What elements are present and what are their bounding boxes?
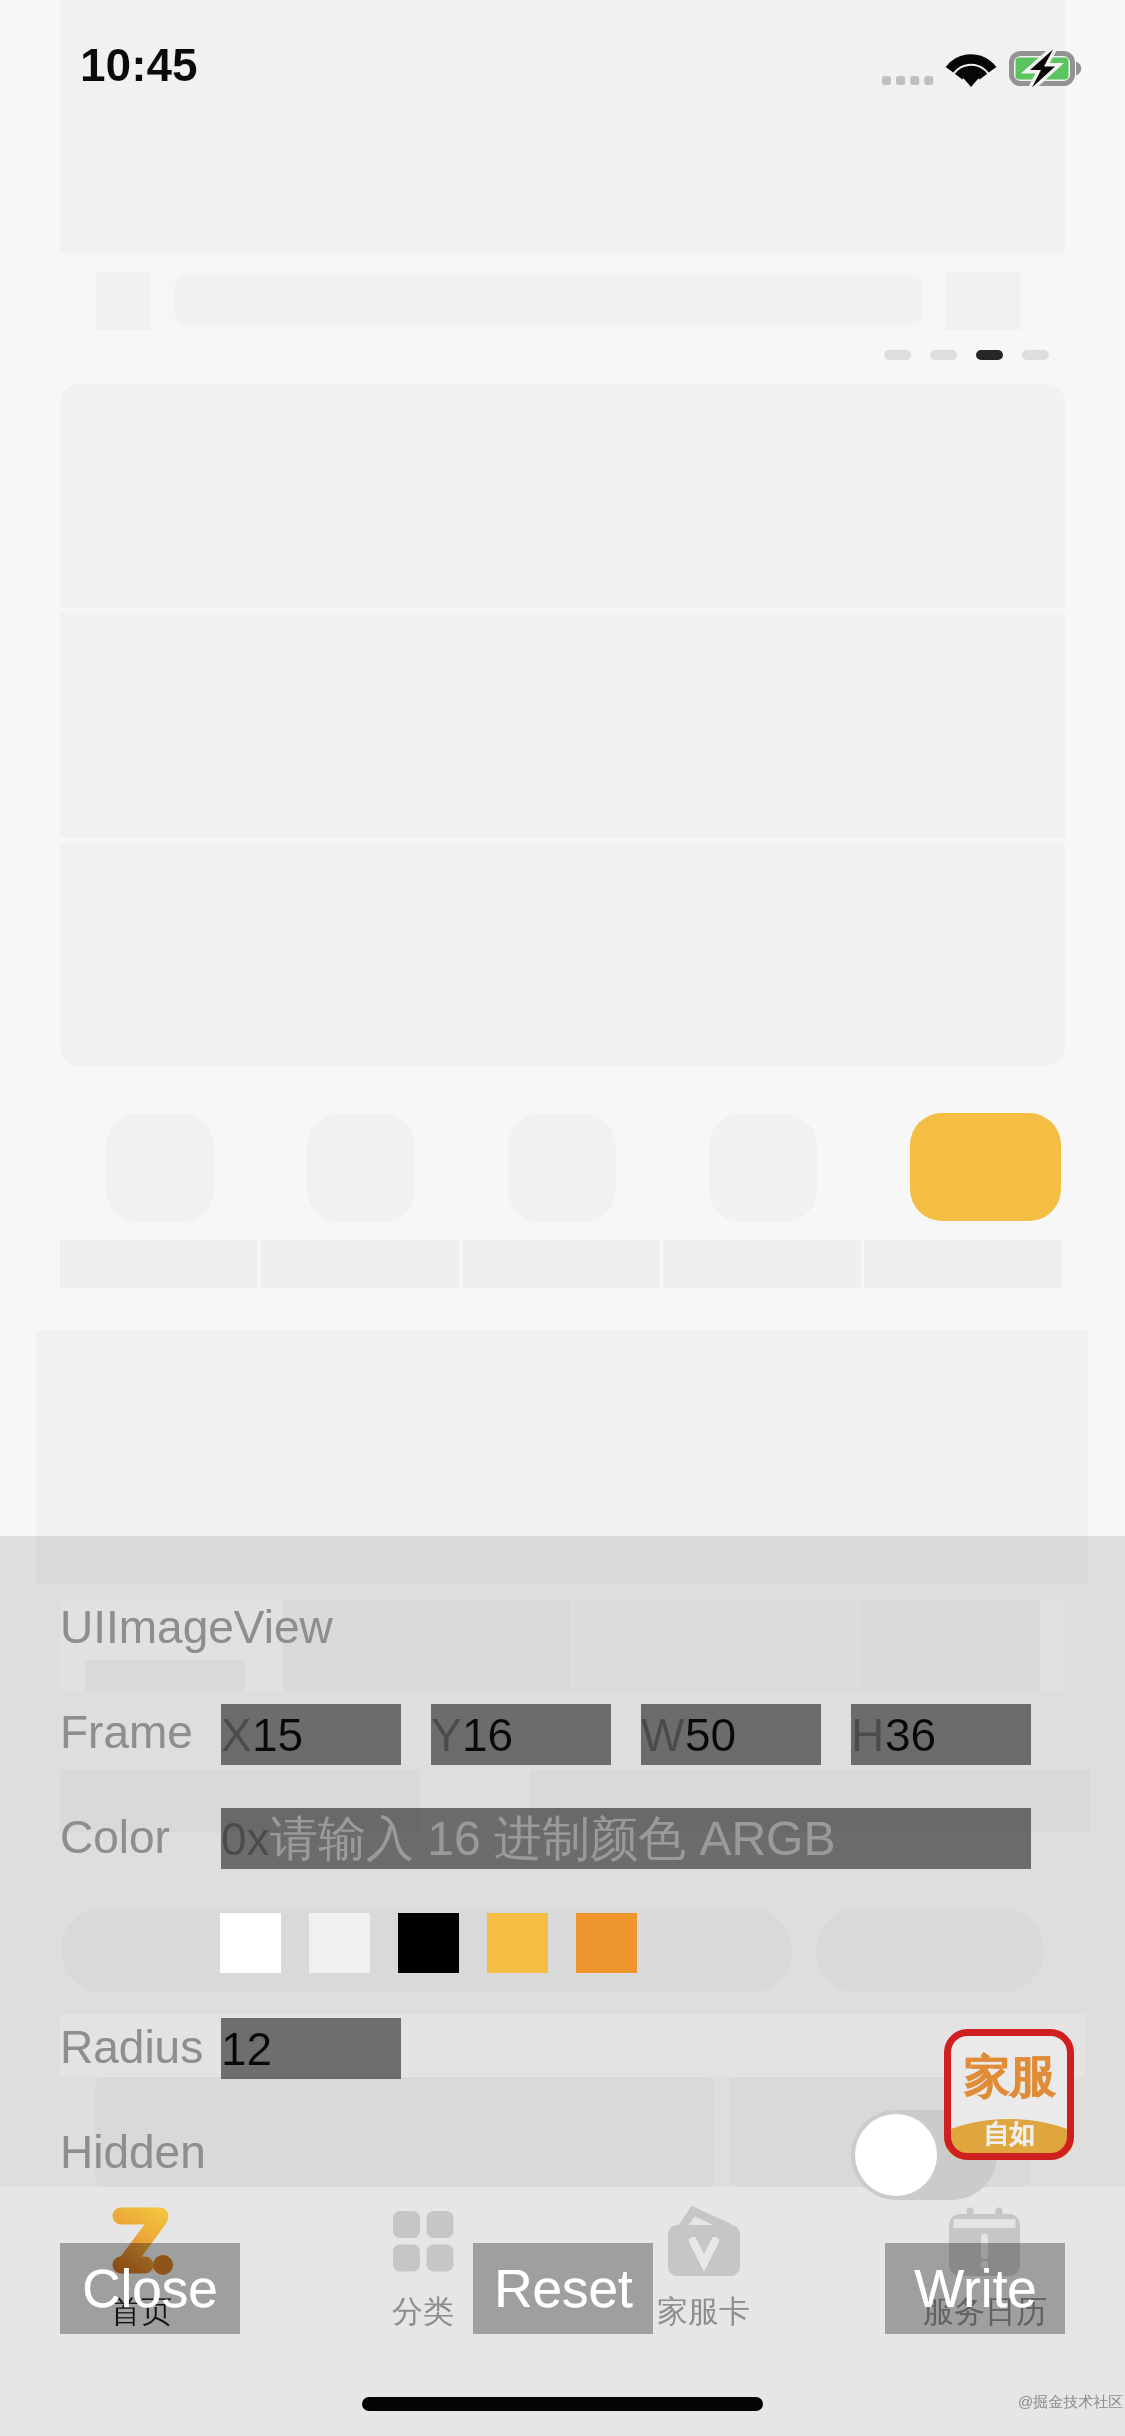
staticText: 12 xyxy=(221,2023,273,2074)
staticText: Frame xyxy=(60,1706,193,1757)
staticText: 0x xyxy=(221,1813,270,1864)
button[interactable]: Reset xyxy=(473,2243,653,2334)
staticText: Close xyxy=(82,2259,218,2318)
staticText: Y xyxy=(431,1709,462,1760)
staticText: Reset xyxy=(494,2259,633,2318)
button[interactable]: 0x xyxy=(221,1808,1031,1869)
button[interactable]: 服务日历 xyxy=(844,2187,1125,2332)
staticText: UIImageView xyxy=(60,1601,333,1652)
staticText: Write xyxy=(914,2259,1037,2318)
button[interactable]: H xyxy=(851,1704,1031,1765)
staticText: Radius xyxy=(60,2021,204,2072)
button[interactable]: quick entry xyxy=(910,1113,1061,1221)
staticText: 请输入 16 进制颜色 ARGB xyxy=(270,1809,836,1869)
staticText: 家服卡 xyxy=(657,2292,750,2331)
button[interactable]: 家服卡 xyxy=(563,2187,844,2332)
staticText: Hidden xyxy=(60,2126,206,2177)
button[interactable]: X xyxy=(221,1704,401,1765)
staticText: Color xyxy=(60,1811,170,1862)
button[interactable]: Hidden toggle xyxy=(851,2110,997,2200)
staticText: X xyxy=(221,1709,252,1760)
staticText: 自如 xyxy=(983,2118,1035,2151)
staticText: 16 xyxy=(462,1709,514,1760)
staticText: 服务日历 xyxy=(923,2292,1047,2331)
staticText: W xyxy=(641,1709,685,1760)
button[interactable]: 分类 xyxy=(282,2187,563,2332)
button[interactable]: 12 xyxy=(221,2018,401,2079)
button[interactable]: Close xyxy=(60,2243,240,2334)
staticText: 分类 xyxy=(392,2292,454,2331)
staticText: H xyxy=(851,1709,885,1760)
staticText: 首页 xyxy=(110,2292,172,2331)
staticText: @掘金技术社区 xyxy=(1018,2393,1124,2412)
staticText: 50 xyxy=(685,1709,737,1760)
button[interactable]: Y xyxy=(431,1704,611,1765)
button[interactable]: 首页 xyxy=(0,2187,282,2332)
staticText: 家服 xyxy=(963,2049,1055,2107)
button[interactable]: W xyxy=(641,1704,821,1765)
button[interactable]: Write xyxy=(885,2243,1065,2334)
staticText: 15 xyxy=(252,1709,304,1760)
staticText: 36 xyxy=(885,1709,937,1760)
staticText: 10:45 xyxy=(80,39,198,90)
